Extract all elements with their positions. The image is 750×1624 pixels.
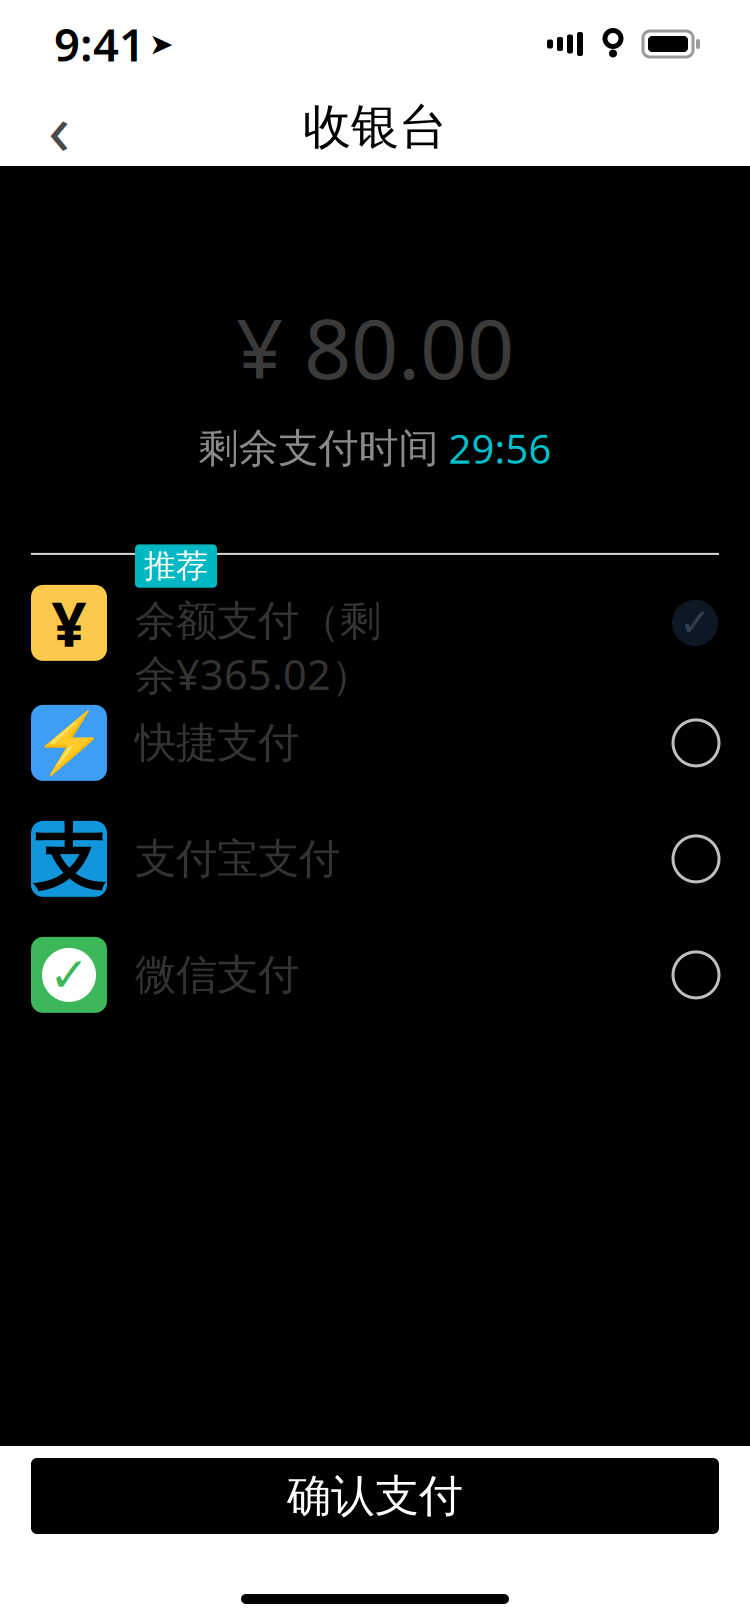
staticText: 支付宝支付 xyxy=(135,833,340,884)
button[interactable]: ¥ xyxy=(0,577,750,669)
button[interactable]: 快捷支付 xyxy=(0,705,750,781)
staticText: ¥ xyxy=(51,582,86,664)
staticText: 推荐 xyxy=(144,546,208,586)
staticText: 快捷支付 xyxy=(135,717,299,768)
staticText: ✓ xyxy=(679,602,710,644)
staticText: ‹ xyxy=(48,79,70,175)
button[interactable]: 确认支付 xyxy=(31,1458,719,1534)
staticText: 余额支付（剩余¥365.02） xyxy=(135,596,381,701)
staticText: 剩余支付时间 xyxy=(198,424,438,473)
button[interactable]: 微信支付 xyxy=(0,937,750,1013)
staticText: 29:56 xyxy=(448,422,551,475)
staticText: 9:41 xyxy=(54,14,145,74)
staticText: ➤ xyxy=(149,27,174,61)
staticText: ✓ xyxy=(49,948,89,1002)
staticText: 确认支付 xyxy=(287,1469,463,1523)
staticText: ⚡ xyxy=(32,709,105,776)
button[interactable]: 返回 xyxy=(14,88,104,166)
staticText: 收银台 xyxy=(303,97,447,156)
staticText: ¥ 80.00 xyxy=(236,292,514,402)
button[interactable]: 支付宝支付 xyxy=(0,821,750,897)
staticText: 支 xyxy=(33,815,105,903)
staticText: 微信支付 xyxy=(135,949,299,1000)
